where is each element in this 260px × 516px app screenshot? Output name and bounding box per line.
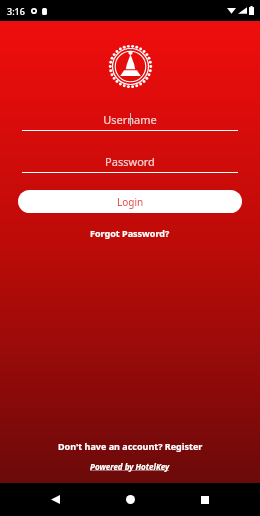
staticText: Forgot Password? — [90, 227, 170, 239]
button[interactable]: Back — [35, 483, 75, 516]
staticText: Login — [117, 195, 144, 209]
button[interactable]: Recent apps — [185, 483, 225, 516]
staticText: Username — [103, 112, 157, 127]
button[interactable]: Forgot Password? — [82, 224, 178, 242]
button[interactable]: Home — [110, 483, 150, 516]
button[interactable]: Powered by HotelKey — [82, 459, 178, 474]
staticText: Powered by HotelKey — [90, 461, 170, 472]
staticText: 3:16 — [7, 5, 25, 17]
button[interactable]: Don't have an account? Register — [50, 438, 211, 454]
button[interactable]: Password — [22, 152, 238, 173]
button[interactable]: Login — [18, 190, 242, 213]
button[interactable]: Username — [22, 110, 238, 131]
staticText: Password — [105, 154, 155, 169]
staticText: Don't have an account? Register — [58, 440, 203, 452]
